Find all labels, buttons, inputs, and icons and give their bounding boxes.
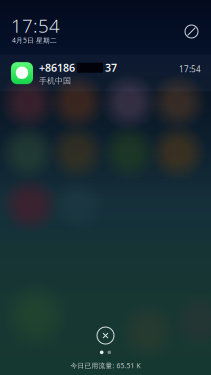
staticText: 17:54 (179, 64, 201, 74)
staticText: 今日已用流量: 65.51 K (70, 361, 140, 370)
button[interactable]: Dismiss notifications (94, 324, 116, 346)
staticText: 17:54 (11, 13, 60, 38)
button[interactable]: Do Not Disturb (184, 13, 199, 39)
button[interactable]: +86186 (0, 55, 211, 92)
staticText: +86186 (39, 61, 75, 75)
staticText: 4月5日 星期二 (12, 36, 57, 45)
staticText: 手机中国 (39, 76, 71, 86)
staticText: 37 (105, 61, 117, 75)
